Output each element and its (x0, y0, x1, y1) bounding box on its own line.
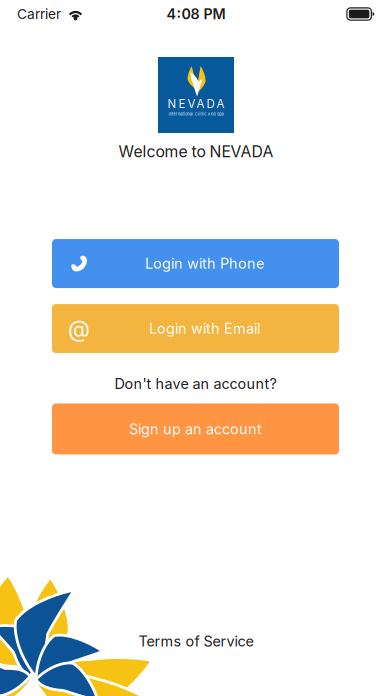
staticText: Login with Email (149, 320, 260, 337)
staticText: Sign up an account (129, 420, 262, 438)
staticText: Carrier (17, 6, 61, 22)
staticText: Login with Phone (145, 255, 264, 272)
staticText: International Clinic And Spa (168, 112, 224, 117)
button[interactable]: Login with Email (52, 304, 339, 353)
staticText: @ (68, 315, 90, 342)
button[interactable]: Login with Phone (52, 239, 339, 288)
staticText: 4:08 PM (166, 5, 225, 23)
staticText: Welcome to NEVADA (118, 142, 273, 161)
button[interactable]: Sign up an account (52, 403, 339, 454)
staticText: Terms of Service (138, 633, 253, 650)
button[interactable]: Terms of Service (138, 633, 253, 650)
staticText: NEVADA (167, 97, 224, 111)
staticText: Don't have an account? (114, 375, 276, 392)
